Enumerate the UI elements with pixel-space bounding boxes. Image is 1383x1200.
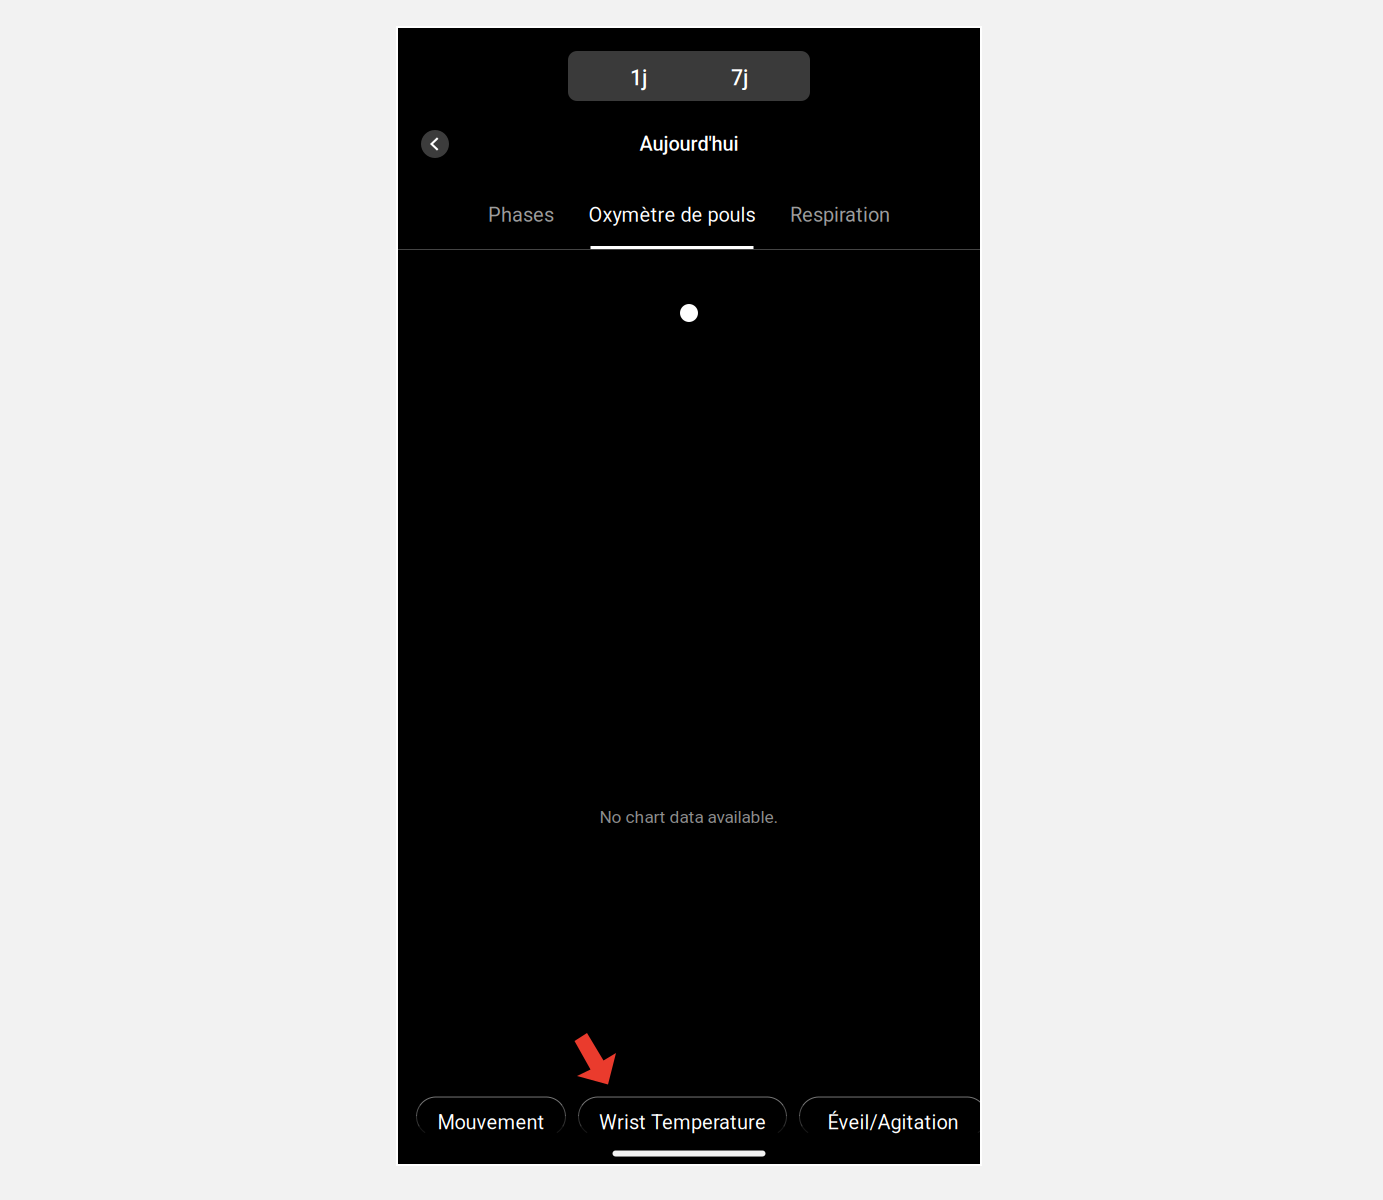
button[interactable]: Mouvement xyxy=(416,1096,566,1136)
staticText: 7j xyxy=(731,65,748,90)
staticText: No chart data available. xyxy=(599,807,778,827)
staticText: Phases xyxy=(488,203,554,227)
staticText: 1j xyxy=(630,65,647,90)
button[interactable]: Oxymètre de pouls xyxy=(588,195,755,235)
staticText: Wrist Temperature xyxy=(599,1111,766,1134)
staticText: Mouvement xyxy=(437,1111,544,1134)
button[interactable]: 1j xyxy=(588,51,689,101)
button[interactable]: 7j xyxy=(689,51,790,101)
button[interactable]: Éveil/Agitation xyxy=(799,1096,987,1136)
button[interactable]: Back xyxy=(421,130,449,158)
button[interactable]: Phases xyxy=(488,195,554,235)
staticText: Aujourd'hui xyxy=(639,132,738,156)
button[interactable]: Wrist Temperature xyxy=(578,1096,787,1136)
button[interactable]: Respiration xyxy=(790,195,890,235)
staticText: Éveil/Agitation xyxy=(827,1111,958,1134)
staticText: Oxymètre de pouls xyxy=(588,203,755,227)
staticText: Respiration xyxy=(790,203,890,227)
